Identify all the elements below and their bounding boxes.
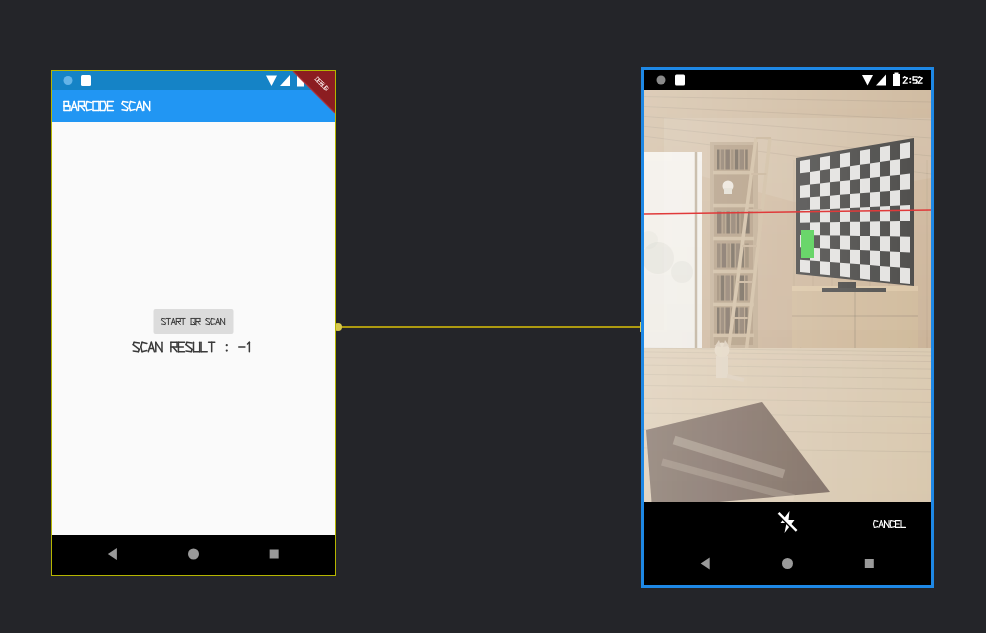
button[interactable]: Back xyxy=(55,544,133,576)
button[interactable]: Recents xyxy=(806,543,884,575)
button[interactable]: Back xyxy=(648,543,726,575)
button[interactable] xyxy=(154,308,234,334)
button[interactable]: Home xyxy=(135,544,213,576)
button[interactable]: Home xyxy=(727,543,805,575)
button[interactable]: Toggle flash xyxy=(772,506,806,540)
button[interactable] xyxy=(862,514,918,540)
button[interactable]: Recents xyxy=(214,544,292,576)
